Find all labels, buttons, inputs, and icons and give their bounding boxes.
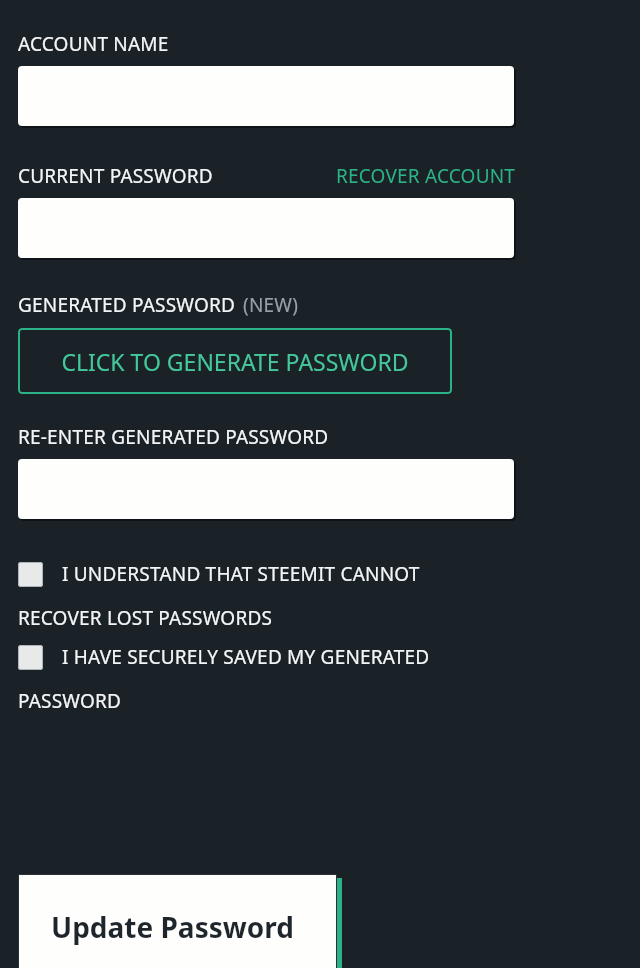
staticText: Update Password bbox=[51, 908, 294, 946]
staticText: RECOVER ACCOUNT bbox=[336, 163, 516, 189]
staticText: RECOVER LOST PASSWORDS bbox=[18, 605, 273, 631]
staticText: I HAVE SECURELY SAVED MY GENERATED bbox=[62, 644, 430, 670]
staticText: (NEW) bbox=[243, 292, 299, 318]
staticText: GENERATED PASSWORD bbox=[18, 292, 236, 318]
button[interactable]: RECOVER ACCOUNT bbox=[336, 163, 516, 189]
button[interactable] bbox=[18, 459, 514, 519]
staticText: CURRENT PASSWORD bbox=[18, 163, 213, 189]
button[interactable] bbox=[18, 66, 514, 126]
button[interactable]: Checkbox bbox=[18, 561, 516, 631]
staticText: CLICK TO GENERATE PASSWORD bbox=[61, 346, 409, 377]
button[interactable]: Checkbox bbox=[18, 644, 516, 714]
button[interactable]: Update Password bbox=[18, 874, 337, 968]
button[interactable] bbox=[18, 198, 514, 258]
staticText: PASSWORD bbox=[18, 688, 122, 714]
staticText: I UNDERSTAND THAT STEEMIT CANNOT bbox=[62, 561, 420, 587]
button[interactable]: CLICK TO GENERATE PASSWORD bbox=[18, 328, 452, 394]
staticText: ACCOUNT NAME bbox=[18, 31, 169, 57]
button[interactable]: Checkbox bbox=[18, 562, 43, 587]
button[interactable]: Checkbox bbox=[18, 645, 43, 670]
staticText: RE-ENTER GENERATED PASSWORD bbox=[18, 424, 329, 450]
